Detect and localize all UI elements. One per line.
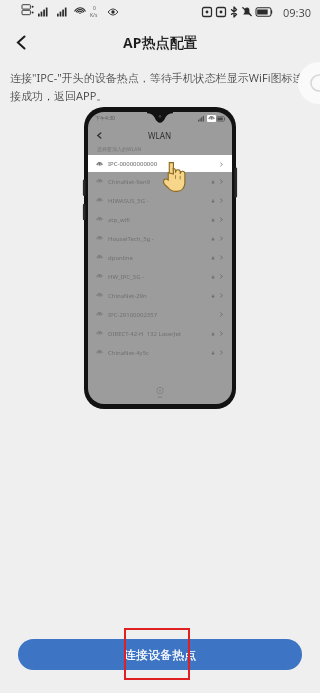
staticText: HouseiTech_5g - (108, 235, 154, 243)
staticText: 连接"IPC-"开头的设备热点，等待手机状态栏显示WiFi图标连接成功，返回AP… (10, 70, 306, 103)
staticText: 选择要加入的WLAN (97, 146, 142, 153)
staticText: IPC-29100002357 (108, 311, 158, 319)
staticText: WLAN (148, 130, 172, 141)
button[interactable]: 返回 (4, 25, 38, 59)
staticText: atp_wifi (108, 216, 130, 224)
staticText: AP热点配置 (123, 33, 198, 52)
staticText: ChinaNet-9an9 (108, 178, 151, 186)
button[interactable]: 连接设备热点 (18, 639, 302, 670)
staticText: 连接设备热点 (124, 647, 196, 662)
staticText: 下午4:30 (95, 115, 115, 122)
staticText: DIRECT-42-H 132 LaserJet (108, 330, 181, 338)
staticText: IPC-00000000000 (108, 160, 158, 168)
staticText: ChinaNet-29n (108, 292, 147, 300)
staticText: dponline (108, 254, 133, 262)
staticText: ChinaNet-4y5c (108, 349, 149, 357)
staticText: 09:30 (283, 5, 312, 20)
staticText: K/s (90, 12, 98, 19)
button[interactable]: 帮助 (298, 62, 320, 104)
staticText: HIWASUS_5G - (108, 197, 149, 205)
staticText: 0 (93, 5, 96, 12)
staticText: HW_IPC_5G - (108, 273, 145, 281)
